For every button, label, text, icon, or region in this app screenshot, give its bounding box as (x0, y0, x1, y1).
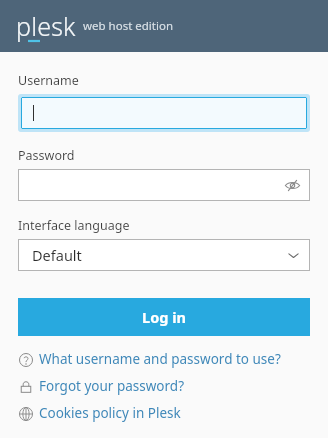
button[interactable]: Show password (18, 169, 310, 201)
staticText: Log in (142, 307, 186, 327)
other: Cookies policy (18, 406, 33, 421)
button[interactable]: Forgot password (18, 377, 310, 395)
other: Forgot password (18, 379, 33, 394)
staticText: Interface language (18, 217, 130, 234)
button[interactable]: Log in (18, 298, 310, 336)
button[interactable]: Help (18, 350, 310, 368)
other: Help (18, 352, 33, 367)
staticText: What username and password to use? (39, 350, 281, 368)
staticText: plesk (16, 9, 76, 43)
button[interactable]: Show password (282, 175, 302, 195)
staticText: Forgot your password? (39, 377, 185, 395)
button[interactable]: Default (18, 239, 310, 271)
staticText: web host edition (83, 18, 174, 34)
staticText: Username (18, 72, 79, 89)
button[interactable] (21, 97, 307, 129)
staticText: Default (32, 245, 82, 265)
button[interactable]: Cookies policy (18, 404, 310, 422)
staticText: Cookies policy in Plesk (39, 404, 181, 422)
staticText: Password (18, 147, 75, 164)
